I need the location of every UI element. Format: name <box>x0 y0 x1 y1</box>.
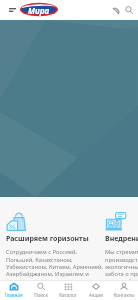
staticText: Акции <box>89 292 103 298</box>
button[interactable]: Mira logo <box>20 2 58 17</box>
staticText: Мира <box>28 5 50 16</box>
button[interactable]: Главная <box>0 281 27 300</box>
staticText: Поиск <box>34 292 48 298</box>
button[interactable]: Search <box>122 0 136 20</box>
button[interactable]: Внедрение технологий <box>105 197 138 280</box>
button[interactable]: Menu <box>5 0 19 20</box>
staticText: Сотрудничаем с Россией, Польшей, Казахст… <box>6 248 104 280</box>
staticText: Внедрение технологий <box>105 234 138 244</box>
button[interactable]: Поиск <box>27 281 54 300</box>
staticText: Расширяем горизонты <box>6 234 89 244</box>
button[interactable]: Расширяем горизонты <box>6 197 106 280</box>
button[interactable]: Call <box>109 0 123 20</box>
staticText: Главная <box>4 292 23 298</box>
staticText: Контакты <box>113 292 135 298</box>
button[interactable]: Акции <box>82 281 110 300</box>
staticText: Каталог <box>59 292 77 298</box>
staticText: Мы стремимся сделать производство максим… <box>105 248 138 280</box>
button[interactable]: Каталог <box>54 281 82 300</box>
button[interactable]: Контакты <box>110 281 138 300</box>
